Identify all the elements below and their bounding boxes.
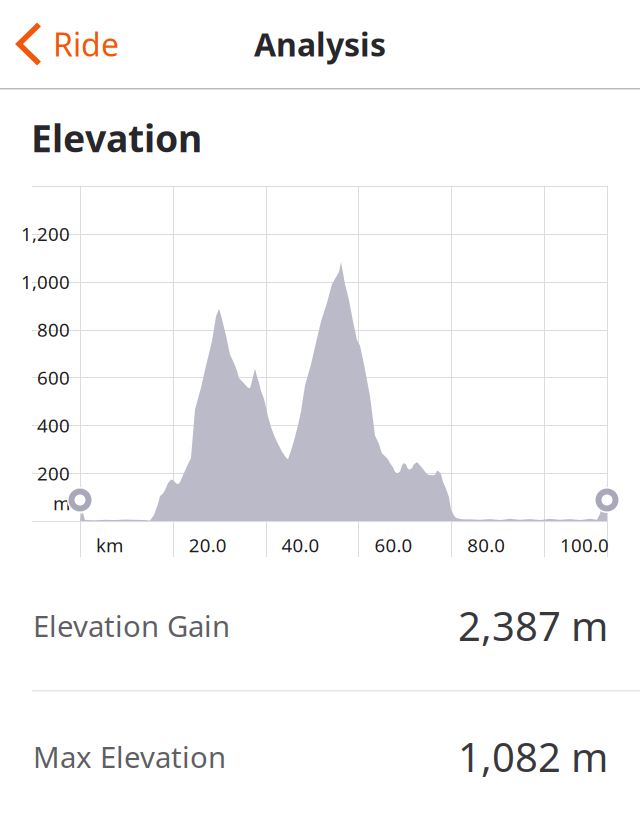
staticText: Elevation	[31, 113, 202, 163]
staticText: km	[96, 533, 123, 557]
staticText: 800	[37, 317, 70, 342]
staticText: 40.0	[282, 533, 320, 557]
staticText: Analysis	[254, 23, 386, 65]
staticText: 1,000	[21, 269, 70, 294]
staticText: 1,200	[21, 221, 70, 246]
staticText: Elevation Gain	[33, 606, 230, 645]
staticText: 20.0	[189, 533, 227, 557]
staticText: 1,082 m	[458, 730, 608, 783]
staticText: Max Elevation	[33, 737, 226, 776]
staticText: 100.0	[560, 533, 609, 557]
button[interactable]: Max Elevation	[0, 691, 640, 822]
staticText: 600	[37, 365, 70, 390]
staticText: 2,387 m	[458, 599, 608, 652]
button[interactable]: Ride	[0, 0, 150, 88]
staticText: 400	[37, 413, 70, 438]
staticText: 80.0	[467, 533, 505, 557]
staticText: Ride	[53, 23, 119, 65]
staticText: m	[53, 491, 70, 515]
staticText: 60.0	[374, 533, 412, 557]
staticText: 200	[37, 461, 70, 485]
button[interactable]: Elevation Gain	[0, 560, 640, 691]
